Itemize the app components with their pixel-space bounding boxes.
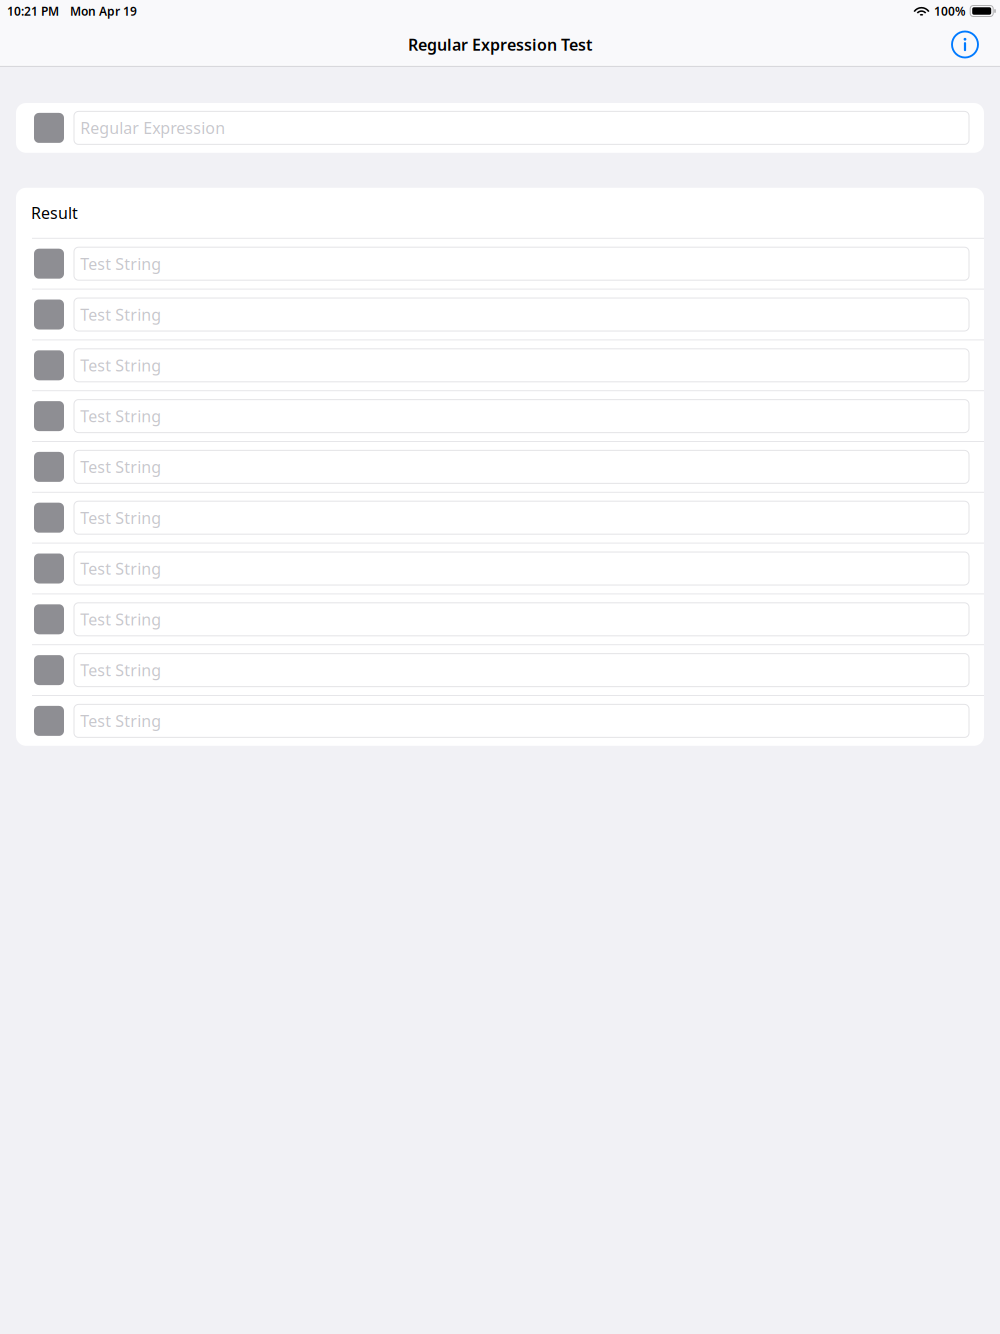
textField[interactable]: Test String (74, 400, 969, 433)
textField[interactable]: Test String (74, 298, 969, 331)
staticText: Test String (80, 558, 161, 579)
button[interactable]: Toggle test string options (34, 706, 64, 736)
staticText: Test String (80, 355, 161, 376)
staticText: Test String (80, 710, 161, 731)
staticText: Test String (80, 456, 161, 477)
button[interactable]: Information (950, 29, 980, 59)
staticText: Test String (80, 405, 161, 427)
button[interactable]: Toggle test string options (34, 350, 64, 380)
button[interactable]: Toggle test string options (34, 452, 64, 482)
textField[interactable]: Test String (74, 247, 969, 280)
staticText: Test String (80, 304, 161, 325)
textField[interactable]: Test String (74, 552, 969, 585)
staticText: Test String (80, 609, 161, 630)
textField[interactable]: Test String (74, 603, 969, 636)
button[interactable]: Toggle test string options (34, 553, 64, 583)
textField[interactable]: Test String (74, 349, 969, 382)
staticText: Test String (80, 253, 161, 274)
staticText: Regular Expression Test (408, 34, 592, 55)
textField[interactable]: Test String (74, 704, 969, 737)
staticText: Test String (80, 659, 161, 681)
textField[interactable]: Regular Expression (74, 111, 969, 144)
staticText: 10:21 PM (7, 3, 59, 19)
textField[interactable]: Test String (74, 501, 969, 534)
button[interactable]: Toggle test string options (34, 604, 64, 634)
staticText: Mon Apr 19 (70, 3, 137, 19)
staticText: Test String (80, 507, 161, 528)
button[interactable]: Toggle test string options (34, 655, 64, 685)
textField[interactable]: Test String (74, 450, 969, 483)
staticText: Result (31, 202, 78, 223)
button[interactable]: Toggle test string options (34, 503, 64, 533)
button[interactable]: Toggle regular expression options (34, 113, 64, 143)
button[interactable]: Toggle test string options (34, 249, 64, 279)
staticText: Regular Expression (80, 117, 225, 138)
staticText: 100% (934, 3, 966, 19)
textField[interactable]: Test String (74, 654, 969, 687)
button[interactable]: Toggle test string options (34, 401, 64, 431)
button[interactable]: Toggle test string options (34, 299, 64, 329)
